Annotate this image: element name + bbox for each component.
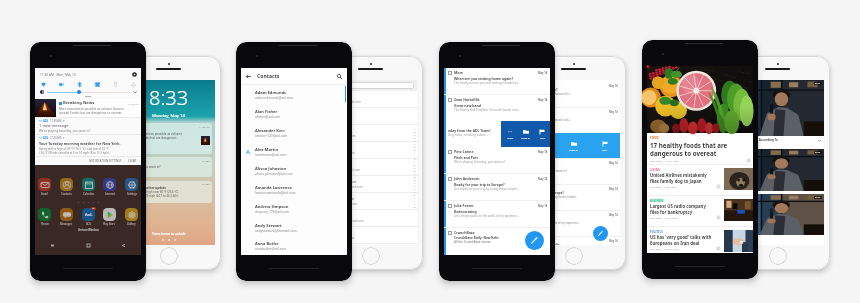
button[interactable]: Toggle 3 <box>93 80 101 88</box>
button[interactable]: Email <box>38 178 51 196</box>
button[interactable]: Sean Hartofilis <box>444 95 550 121</box>
button[interactable]: NOTIFICATION SETTINGS <box>89 159 122 163</box>
button[interactable]: Calendar <box>82 178 95 196</box>
button[interactable]: Compose <box>525 231 544 250</box>
button[interactable]: Amanda Lawrence <box>325 176 417 192</box>
button[interactable]: Toggle 4 <box>111 80 119 88</box>
staticText: Alexander Kerr <box>255 128 285 133</box>
button[interactable]: Toggle 0 <box>39 80 47 88</box>
button[interactable]: Breaking News <box>35 99 141 117</box>
staticText: May 14 <box>609 239 618 242</box>
staticText: K <box>414 158 416 161</box>
button[interactable]: Alan Fisher <box>241 104 347 123</box>
button[interactable]: Anna Butler <box>325 227 417 243</box>
button[interactable]: LIVING <box>647 165 753 195</box>
staticText: Tuesday weather update <box>129 186 166 190</box>
button[interactable]: May 14 <box>528 108 620 133</box>
button[interactable]: 9h ago <box>126 157 212 177</box>
staticText: May 14 <box>609 84 618 87</box>
button[interactable]: CrunchBase <box>444 228 550 255</box>
staticText: s you and looking forward to... <box>530 92 572 96</box>
button[interactable]: POLITICS <box>647 227 753 253</box>
button[interactable]: Julia Foster <box>444 201 550 227</box>
button[interactable]: Amanda Lawrence <box>241 180 347 199</box>
button[interactable]: Gallery <box>125 208 138 226</box>
button[interactable]: Flag <box>589 133 620 158</box>
button[interactable]: AOL <box>35 135 141 156</box>
staticText: annabutler@aol.com <box>255 247 287 251</box>
staticText: NOTIFICATION SETTINGS <box>89 159 122 163</box>
staticText: Gallery <box>127 222 136 226</box>
button[interactable]: May 14 <box>528 82 620 107</box>
button[interactable]: Settings <box>131 71 138 78</box>
button[interactable]: Flag <box>534 121 550 147</box>
button[interactable]: Aol. <box>82 208 95 226</box>
button[interactable]: May 14 <box>528 185 620 210</box>
button[interactable]: Search <box>335 72 344 81</box>
staticText: V <box>414 191 416 194</box>
staticText: roblem. It's math based rock... <box>530 118 572 122</box>
button[interactable]: John Anderson <box>444 174 550 200</box>
button[interactable]: Mark as <box>528 133 558 158</box>
button[interactable]: Expand <box>817 138 822 143</box>
button[interactable]: Alison Johnston <box>241 161 347 180</box>
button[interactable]: More <box>501 121 518 147</box>
button[interactable]: Internet <box>103 178 116 196</box>
button[interactable]: Play video <box>732 149 824 191</box>
button[interactable]: Andy Stewart <box>325 210 417 226</box>
button[interactable]: Move to <box>558 133 589 158</box>
button[interactable]: Back <box>244 72 253 81</box>
button[interactable]: BUSINESS <box>647 196 753 226</box>
button[interactable]: May 14 <box>528 237 620 245</box>
button[interactable]: A <box>241 142 347 161</box>
button[interactable]: Adam Edmunds <box>325 91 417 107</box>
button[interactable]: 2h ago <box>126 181 212 203</box>
button[interactable]: Play Store <box>103 208 116 226</box>
button[interactable]: Andy Stewart <box>241 218 347 237</box>
button[interactable]: Toggle 5 <box>129 80 137 88</box>
button[interactable]: AOL <box>35 118 141 134</box>
button[interactable]: Alexander Kerr <box>241 123 347 142</box>
button[interactable]: Play video <box>732 194 824 235</box>
button[interactable]: Settings <box>125 178 138 196</box>
staticText: Contacts <box>61 192 72 196</box>
button[interactable]: CLEAR <box>128 159 137 163</box>
button[interactable]: Andrew Simpson <box>241 199 347 218</box>
button[interactable]: 11:00 AM <box>126 123 212 154</box>
button[interactable]: Home <box>84 241 93 250</box>
button[interactable]: Alexander Kerr <box>325 125 417 141</box>
button[interactable]: Contacts <box>60 178 73 196</box>
button[interactable]: May 14 <box>528 159 620 184</box>
button[interactable]: Alison Johnston <box>325 159 417 175</box>
button[interactable]: Messages <box>60 208 73 226</box>
button[interactable]: Toggle 1 <box>57 80 65 88</box>
button[interactable]: Compose <box>593 226 608 241</box>
button[interactable]: Anna Butler <box>241 237 347 255</box>
button[interactable]: Play video <box>732 80 824 136</box>
staticText: Winds 15 to 25 mph (24.1 to 40.2 k/h). <box>129 194 179 198</box>
staticText: 2h ago <box>202 182 210 185</box>
staticText: Amanda Lawrence <box>255 185 292 190</box>
button[interactable]: Toggle 2 <box>75 80 83 88</box>
button[interactable]: Alan Fisher <box>325 108 417 124</box>
staticText: Ready for your trip to Europe? <box>454 182 505 187</box>
button[interactable]: Alex Martin <box>325 142 417 158</box>
button[interactable]: Andrew Simpson <box>325 193 417 209</box>
button[interactable]: Pete Lanne <box>444 147 550 173</box>
button[interactable]: Adam Edmunds <box>241 85 347 104</box>
staticText: oday from the ADL Team! <box>448 128 491 133</box>
button[interactable]: Recents <box>48 241 57 250</box>
staticText: More evacuations possible as volcano <box>129 132 182 136</box>
button[interactable]: Phone <box>38 208 51 226</box>
button[interactable]: Back <box>119 241 128 250</box>
button[interactable]: May 14 <box>528 211 620 236</box>
staticText: or your trip by using these simple... <box>530 195 578 199</box>
staticText: Flag <box>602 148 607 151</box>
staticText: AOL.COM · 2 DAYS AGO <box>650 247 679 250</box>
button[interactable]: Mom <box>444 68 550 94</box>
button[interactable]: Move to <box>518 121 534 147</box>
